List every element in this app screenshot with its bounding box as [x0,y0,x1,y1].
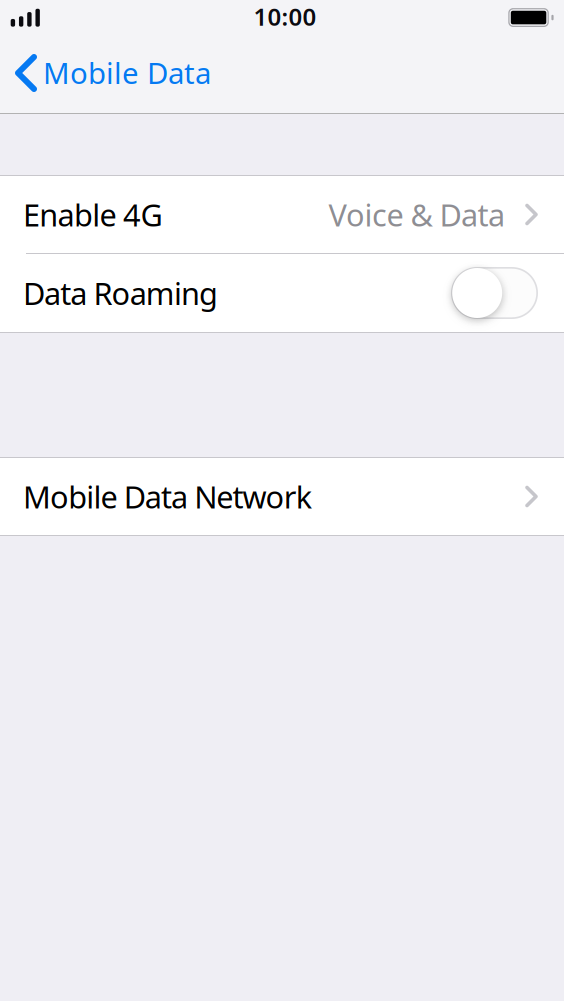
staticText: 10:00 [253,1,316,32]
button[interactable]: Data Roaming, off [451,267,538,319]
staticText: Mobile Data [43,53,211,92]
button[interactable]: Mobile Data Network [0,458,564,535]
staticText: Enable 4G [23,194,162,235]
button[interactable]: Enable 4G [0,176,564,253]
staticText: Voice & Data [328,194,505,235]
staticText: Mobile Data Network [23,476,312,517]
button[interactable]: Mobile Data [0,30,221,113]
staticText: Data Roaming [23,273,218,313]
